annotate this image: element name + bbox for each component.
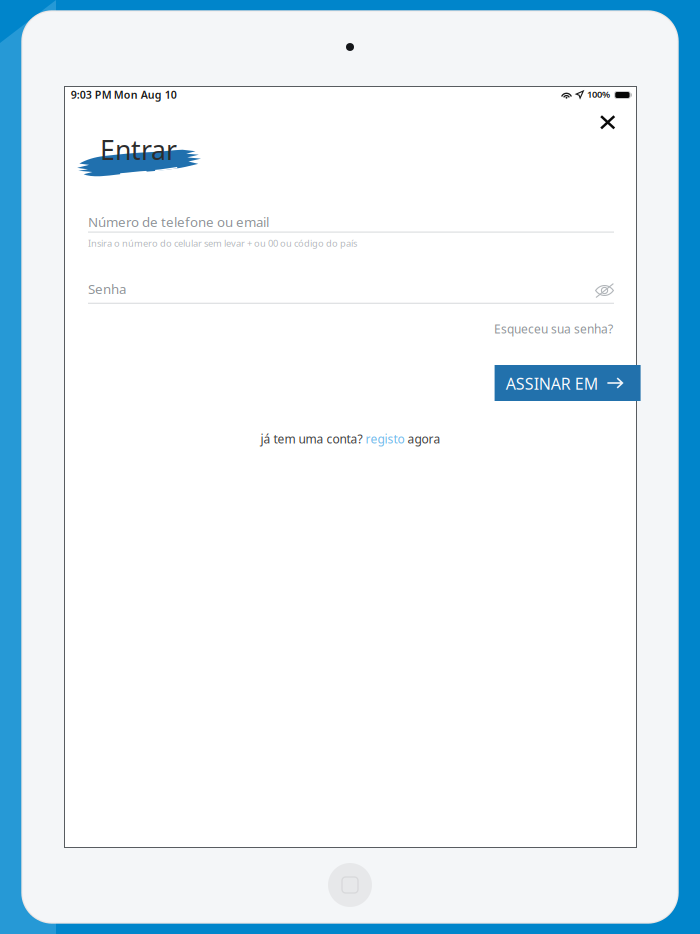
button[interactable]: ASSINAR EM (495, 365, 641, 401)
staticText: Senha (88, 280, 126, 298)
button[interactable]: registo (365, 431, 404, 447)
staticText: Entrar (100, 132, 177, 167)
staticText: registo (365, 431, 404, 447)
staticText: 100% (587, 88, 610, 100)
staticText: Esqueceu sua senha? (494, 321, 613, 337)
staticText: Mon Aug 10 (114, 88, 177, 102)
button[interactable]: Esqueceu sua senha? (494, 321, 613, 337)
staticText: Insira o número do celular sem levar + o… (88, 237, 357, 249)
button[interactable]: Show password (586, 276, 622, 304)
staticText: agora (404, 431, 440, 447)
staticText: já tem uma conta? (260, 431, 365, 447)
staticText: 9:03 PM (71, 88, 112, 102)
staticText: Número de telefone ou email (88, 213, 269, 231)
button[interactable]: Close (586, 103, 630, 141)
staticText: ASSINAR EM (506, 373, 599, 394)
